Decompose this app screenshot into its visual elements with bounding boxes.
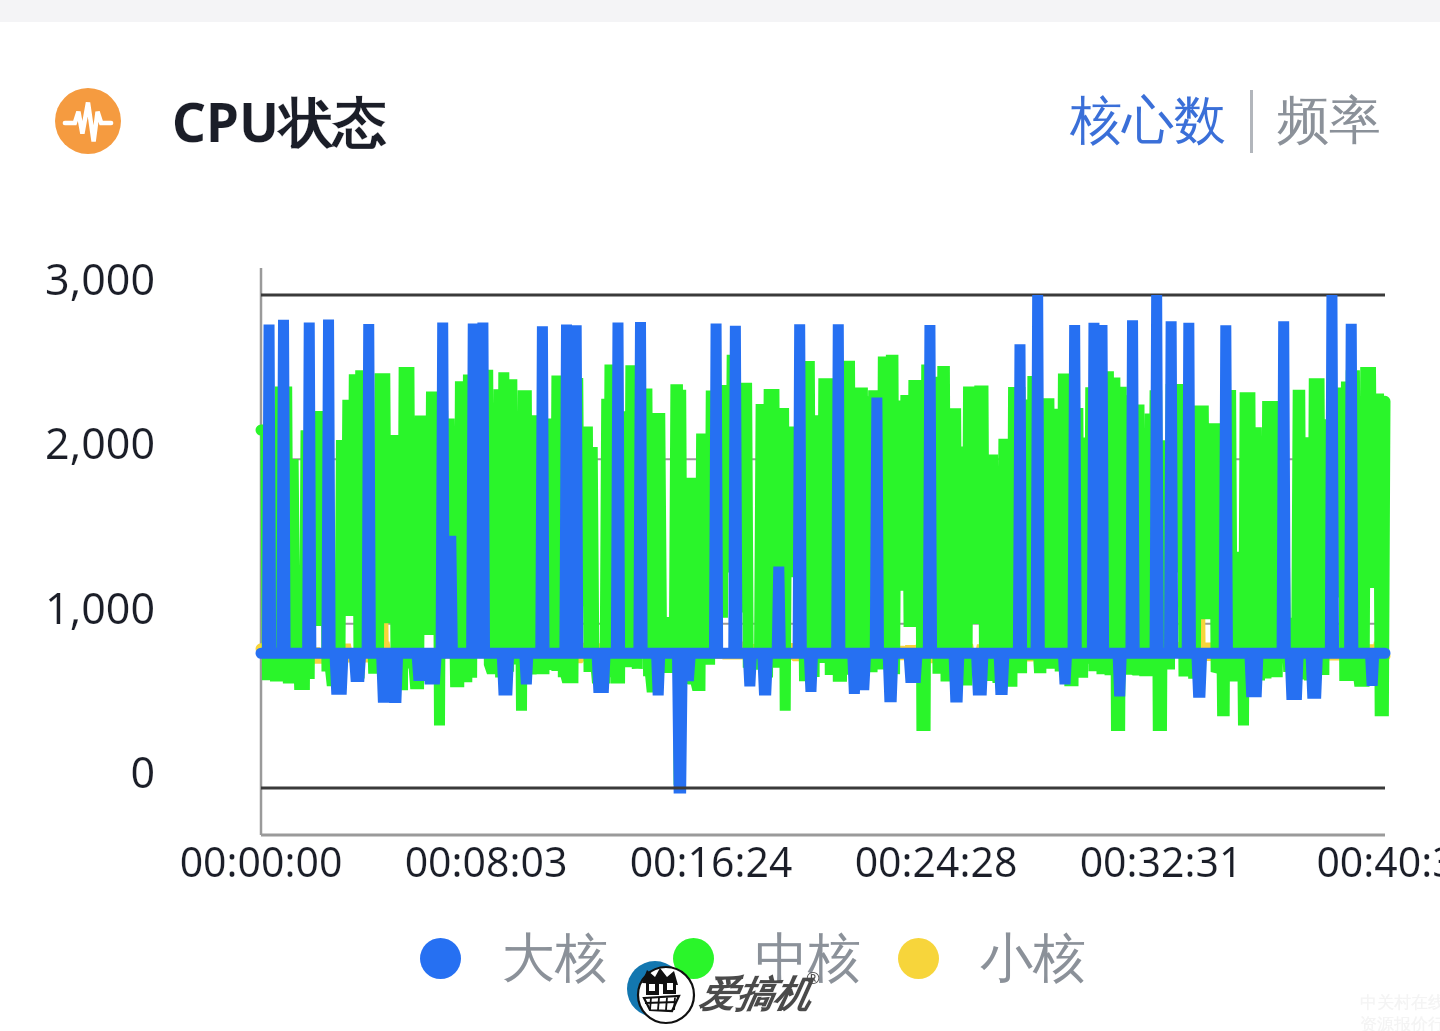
other: CPU monitor (55, 88, 121, 154)
staticText: CPU状态 (172, 85, 386, 157)
staticText: 核心数 (1070, 88, 1226, 154)
staticText: 2,000 (0, 413, 155, 472)
staticText: 1,000 (0, 578, 155, 637)
button[interactable]: 频率 (1273, 82, 1385, 160)
staticText: 00:00:00 (141, 833, 381, 889)
staticText: 中关村在线 资源报价行情 (1360, 992, 1440, 1031)
button[interactable]: 小核 (898, 925, 1086, 992)
staticText: 00:08:03 (366, 833, 606, 889)
staticText: 小核 (980, 925, 1086, 992)
staticText: 频率 (1277, 88, 1381, 154)
staticText: 00:16:24 (591, 833, 831, 889)
staticText: 爱搞机 (698, 971, 809, 1018)
staticText: 中核 (755, 925, 861, 992)
staticText: 3,000 (0, 249, 155, 308)
staticText: ® (806, 966, 821, 989)
staticText: 0 (0, 742, 155, 801)
button[interactable]: 核心数 (1066, 82, 1230, 160)
button[interactable]: 中核 (673, 925, 861, 992)
staticText: 大核 (502, 925, 608, 992)
button[interactable]: 大核 (420, 925, 608, 992)
staticText: 00:40:3 (1266, 833, 1440, 889)
staticText: 00:32:31 (1041, 833, 1281, 889)
staticText: 00:24:28 (816, 833, 1056, 889)
